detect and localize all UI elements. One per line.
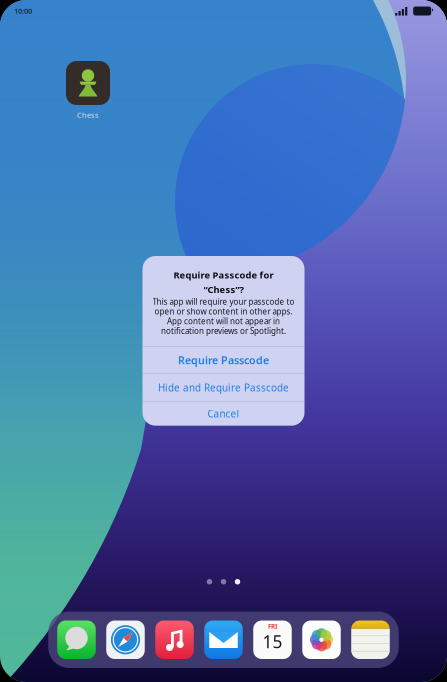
button[interactable]: Require Passcode <box>142 346 304 373</box>
button[interactable]: Messages <box>57 620 96 659</box>
button[interactable]: Mail <box>204 620 243 659</box>
staticText: Chess <box>77 110 99 120</box>
staticText: 15 <box>262 630 282 653</box>
staticText: Hide and Require Passcode <box>158 381 289 394</box>
button[interactable]: Hide and Require Passcode <box>142 374 304 401</box>
button[interactable]: Photos <box>302 620 341 659</box>
staticText: 10:00 <box>14 6 32 16</box>
staticText: Require Passcode for <box>173 268 273 281</box>
button[interactable]: Music <box>155 620 194 659</box>
staticText: This app will require your passcode to <box>152 296 294 307</box>
button[interactable]: Safari <box>106 620 145 659</box>
staticText: Cancel <box>207 407 239 420</box>
staticText: notification previews or Spotlight. <box>161 326 286 336</box>
staticText: “Chess”? <box>203 283 243 296</box>
staticText: App content will not appear in <box>167 316 280 327</box>
staticText: FRI <box>268 622 277 631</box>
button[interactable]: Chess <box>66 61 110 120</box>
staticText: Require Passcode <box>178 353 269 367</box>
staticText: open or show content in other apps. <box>154 306 292 317</box>
button[interactable]: Calendar <box>253 620 292 659</box>
button[interactable]: Cancel <box>142 402 304 426</box>
button[interactable]: Notes <box>351 620 390 659</box>
